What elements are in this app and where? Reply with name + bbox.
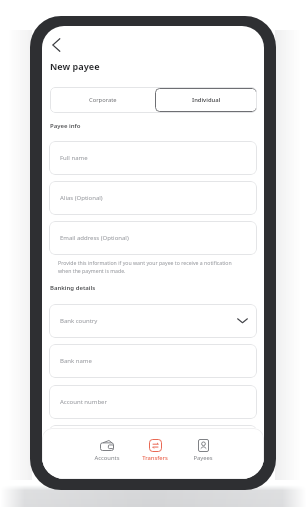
staticText: New payee <box>50 60 100 72</box>
button[interactable]: Bank country <box>49 304 257 338</box>
button[interactable]: Bank name <box>49 344 257 378</box>
button[interactable]: Alias (Optional) <box>49 181 257 215</box>
button[interactable] <box>49 425 257 459</box>
button[interactable]: Corporate <box>51 87 154 113</box>
staticText: Transfers <box>142 454 168 462</box>
staticText: Payees <box>193 454 213 462</box>
button[interactable]: Payees <box>185 439 221 462</box>
button[interactable]: Individual <box>155 88 257 112</box>
staticText: Provide this information if you want you… <box>58 259 244 274</box>
staticText: Bank country <box>60 317 98 325</box>
button[interactable]: Account number <box>49 385 257 419</box>
staticText: Account number <box>60 398 107 406</box>
staticText: Individual <box>192 96 221 104</box>
staticText: Corporate <box>89 96 117 104</box>
staticText: Alias (Optional) <box>60 194 103 202</box>
staticText: Full name <box>60 154 88 162</box>
button[interactable]: Back <box>44 33 68 57</box>
button[interactable]: Full name <box>49 141 257 175</box>
staticText: Accounts <box>94 454 120 462</box>
staticText: Email address (Optional) <box>60 234 129 242</box>
button[interactable]: Transfers <box>137 439 173 462</box>
staticText: Banking details <box>50 284 96 292</box>
staticText: Bank name <box>60 357 92 365</box>
staticText: Payee info <box>50 122 81 130</box>
button[interactable]: Email address (Optional) <box>49 221 257 255</box>
button[interactable]: Accounts <box>89 439 125 462</box>
